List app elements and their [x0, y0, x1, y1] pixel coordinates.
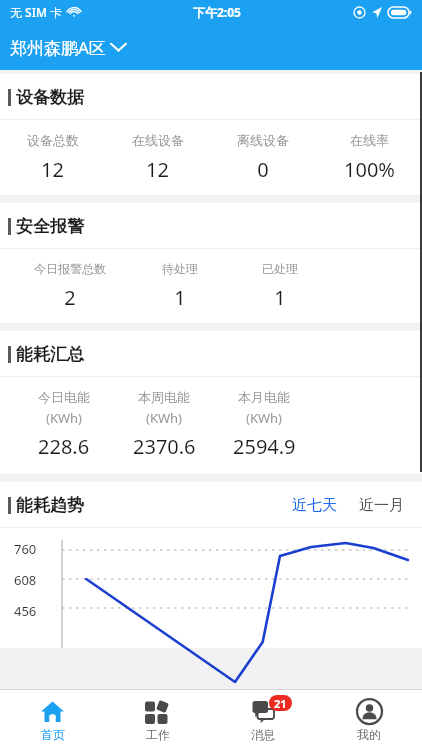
- staticText: 2: [64, 284, 76, 311]
- button[interactable]: 已处理: [230, 261, 330, 311]
- staticText: 12: [41, 156, 64, 183]
- button[interactable]: 消息: [210, 690, 316, 750]
- staticText: 能耗汇总: [16, 344, 84, 365]
- staticText: 228.6: [38, 433, 90, 460]
- button[interactable]: 待处理: [130, 261, 230, 311]
- staticText: 456: [14, 602, 37, 620]
- button[interactable]: 今日电能: [14, 389, 114, 460]
- staticText: 已处理: [262, 261, 298, 276]
- staticText: 无 SIM 卡: [10, 4, 63, 20]
- button[interactable]: 首页: [0, 690, 105, 750]
- staticText: 今日电能: [38, 389, 90, 405]
- staticText: 760: [14, 540, 37, 558]
- staticText: 待处理: [162, 261, 198, 276]
- button[interactable]: 郑州森鹏A区: [0, 24, 422, 70]
- button[interactable]: 近七天: [288, 492, 341, 519]
- staticText: 下午2:05: [193, 4, 241, 20]
- staticText: 近七天: [292, 496, 337, 515]
- button[interactable]: 近一月: [355, 492, 408, 519]
- staticText: 能耗趋势: [16, 495, 84, 516]
- staticText: 在线设备: [132, 132, 184, 148]
- staticText: 在线率: [350, 132, 389, 148]
- button[interactable]: 离线设备: [210, 132, 316, 183]
- staticText: 近一月: [359, 496, 404, 515]
- staticText: 我的: [357, 727, 381, 742]
- button[interactable]: 今日报警总数: [10, 261, 130, 311]
- staticText: 安全报警: [16, 216, 84, 237]
- staticText: 100%: [344, 156, 395, 183]
- staticText: 本月电能: [238, 389, 290, 405]
- staticText: 21: [274, 696, 287, 711]
- staticText: 1: [274, 284, 286, 311]
- button[interactable]: 工作: [105, 690, 210, 750]
- staticText: 1: [174, 284, 186, 311]
- staticText: (KWh): [146, 409, 182, 427]
- staticText: 消息: [251, 727, 275, 742]
- staticText: 设备总数: [27, 132, 79, 148]
- button[interactable]: 设备总数: [0, 132, 105, 183]
- staticText: 首页: [41, 727, 65, 742]
- button[interactable]: 本周电能: [114, 389, 214, 460]
- staticText: 设备数据: [16, 87, 84, 108]
- staticText: 12: [146, 156, 169, 183]
- button[interactable]: 在线率: [316, 132, 422, 183]
- staticText: 2370.6: [133, 433, 196, 460]
- staticText: 本周电能: [138, 389, 190, 405]
- staticText: 2594.9: [233, 433, 296, 460]
- staticText: (KWh): [46, 409, 82, 427]
- staticText: (KWh): [246, 409, 282, 427]
- staticText: 608: [14, 571, 37, 589]
- staticText: 工作: [146, 727, 170, 742]
- button[interactable]: 在线设备: [105, 132, 210, 183]
- button[interactable]: 本月电能: [214, 389, 314, 460]
- staticText: 0: [257, 156, 269, 183]
- staticText: 离线设备: [237, 132, 289, 148]
- button[interactable]: 我的: [316, 690, 422, 750]
- staticText: 郑州森鹏A区: [10, 36, 106, 59]
- staticText: 今日报警总数: [34, 261, 106, 276]
